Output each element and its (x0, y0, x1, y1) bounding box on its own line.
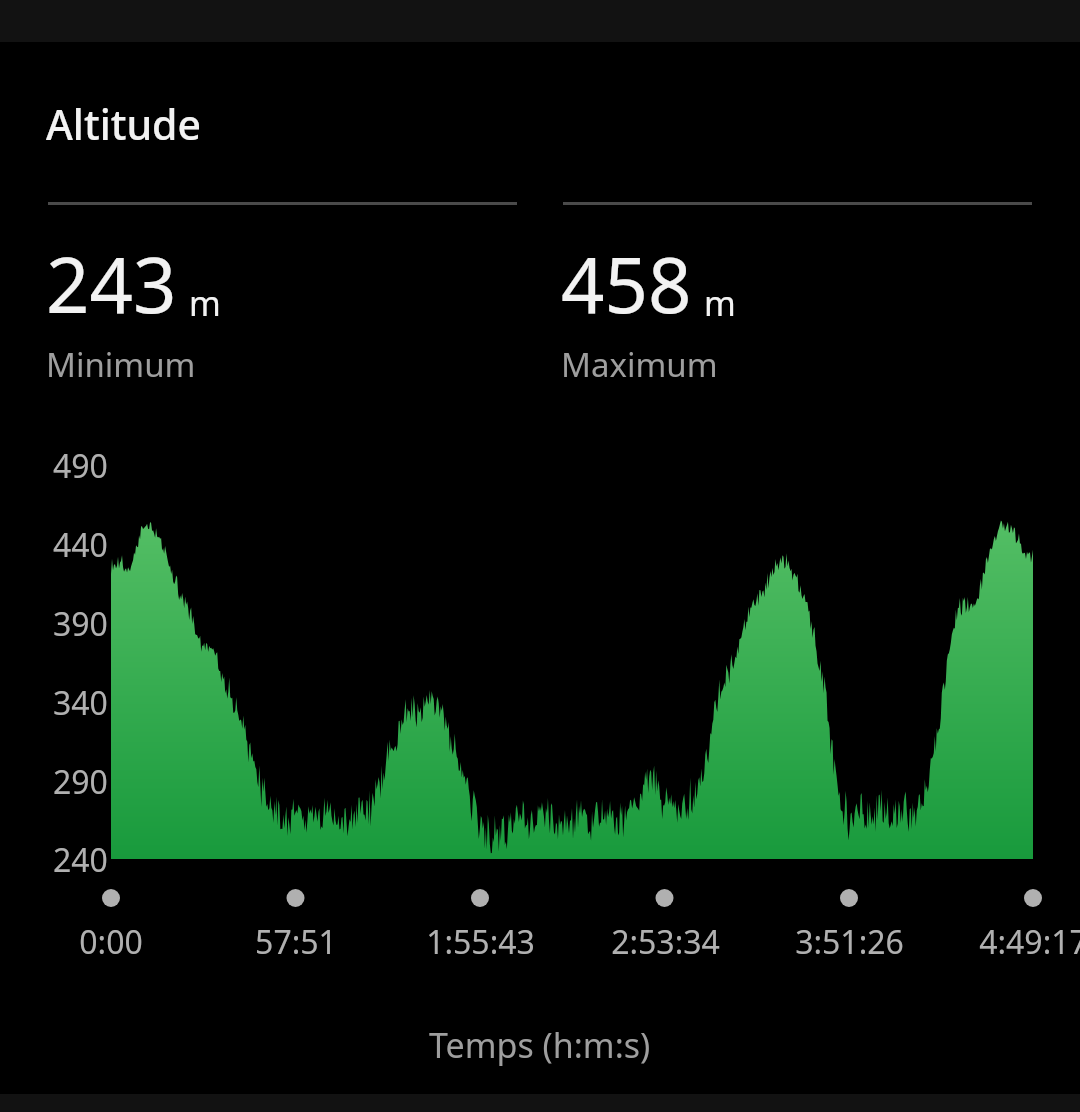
staticText: 440 (53, 523, 108, 567)
staticText: 4:49:17 (979, 920, 1080, 964)
staticText: 290 (53, 760, 108, 804)
button[interactable]: Altitude elevation profile chart (111, 440, 1033, 862)
staticText: 1:55:43 (426, 920, 535, 964)
staticText: m (704, 280, 736, 326)
staticText: 490 (53, 444, 108, 488)
staticText: 240 (53, 838, 108, 882)
staticText: 2:53:34 (611, 920, 720, 964)
staticText: Maximum (561, 342, 718, 387)
staticText: 458 (561, 232, 692, 336)
staticText: 390 (53, 602, 108, 646)
staticText: 57:51 (255, 920, 337, 964)
staticText: 0:00 (79, 920, 143, 964)
staticText: 243 (46, 232, 177, 336)
staticText: Altitude (46, 96, 202, 152)
staticText: Minimum (46, 342, 196, 387)
staticText: 340 (53, 681, 108, 725)
staticText: m (189, 280, 221, 326)
button[interactable]: 458 (561, 232, 1031, 387)
staticText: 3:51:26 (795, 920, 904, 964)
staticText: Temps (h:m:s) (429, 1022, 651, 1068)
button[interactable]: 243 (46, 232, 516, 387)
